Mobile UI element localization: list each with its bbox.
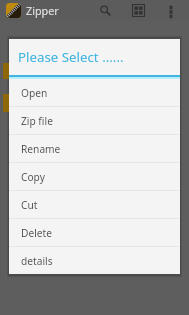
button[interactable]: More options bbox=[162, 0, 180, 21]
button[interactable]: Copy bbox=[9, 163, 180, 191]
staticText: Zipper bbox=[26, 3, 59, 18]
staticText: Zip file bbox=[21, 114, 53, 128]
button[interactable]: Zip file bbox=[9, 107, 180, 135]
staticText: Copy bbox=[21, 170, 45, 184]
staticText: Please Select ...... bbox=[18, 48, 124, 66]
button[interactable]: Search bbox=[95, 0, 115, 21]
button[interactable]: Rename bbox=[9, 135, 180, 163]
staticText: Delete bbox=[21, 226, 52, 240]
button[interactable]: Delete bbox=[9, 219, 180, 247]
button[interactable]: details bbox=[9, 247, 180, 274]
button[interactable]: Open bbox=[9, 79, 180, 107]
staticText: details bbox=[21, 254, 53, 268]
staticText: Rename bbox=[21, 142, 61, 156]
button[interactable]: Cut bbox=[9, 191, 180, 219]
button[interactable]: Grid view bbox=[128, 0, 149, 21]
staticText: Cut bbox=[21, 198, 38, 212]
staticText: Open bbox=[21, 86, 48, 100]
